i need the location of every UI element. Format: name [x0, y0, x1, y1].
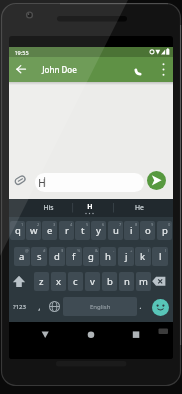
staticText: ( [148, 248, 150, 253]
staticText: f [72, 250, 76, 263]
button[interactable]: . [135, 296, 145, 315]
staticText: 1 [21, 222, 24, 227]
staticText: y [96, 224, 101, 237]
button[interactable]: j [118, 247, 134, 266]
button[interactable]: ?123 [9, 297, 30, 316]
button[interactable]: i [124, 221, 139, 240]
staticText: w [30, 224, 38, 237]
button[interactable]: y [91, 221, 106, 240]
button[interactable]: m [136, 272, 151, 291]
staticText: m [139, 275, 148, 288]
staticText: v [90, 275, 95, 288]
button[interactable]: He [119, 199, 159, 215]
staticText: r [65, 224, 69, 237]
staticText: g [88, 250, 94, 263]
button[interactable]: f [66, 247, 82, 266]
button[interactable]: H [70, 199, 110, 215]
staticText: u [113, 224, 119, 237]
staticText: t [81, 224, 85, 237]
staticText: . [139, 300, 142, 312]
staticText: 0 [168, 222, 171, 227]
button[interactable]: o [140, 221, 155, 240]
staticText: q [15, 224, 21, 237]
button[interactable]: c [68, 272, 83, 291]
button[interactable] [134, 64, 146, 75]
staticText: k [140, 250, 146, 263]
button[interactable] [128, 326, 144, 343]
staticText: 7 [119, 222, 122, 227]
button[interactable] [37, 326, 53, 343]
staticText: , [38, 301, 41, 313]
staticText: John Doe [42, 64, 77, 75]
button[interactable]: H [35, 173, 144, 192]
button[interactable]: English [63, 297, 137, 316]
staticText: b [107, 275, 113, 288]
staticText: ?123 [13, 303, 26, 311]
button[interactable] [13, 173, 27, 187]
staticText: x [56, 275, 62, 288]
button[interactable]: , [34, 297, 44, 316]
staticText: # [43, 248, 46, 253]
staticText: $ [61, 248, 64, 253]
staticText: c [73, 275, 78, 288]
button[interactable]: u [108, 221, 123, 240]
staticText: ) [165, 248, 167, 253]
staticText: H [38, 176, 46, 190]
staticText: 8 [135, 222, 138, 227]
button[interactable]: r [59, 221, 74, 240]
staticText: 2 [37, 222, 40, 227]
button[interactable]: v [85, 272, 100, 291]
button[interactable]: x [51, 272, 66, 291]
staticText: & [95, 248, 98, 253]
staticText: s [37, 250, 42, 263]
staticText: 5 [86, 222, 89, 227]
staticText: 4 [70, 222, 73, 227]
button[interactable]: g [83, 247, 99, 266]
button[interactable]: His [28, 199, 68, 215]
staticText: j [125, 250, 128, 263]
button[interactable]: a [14, 247, 30, 266]
button[interactable] [147, 171, 166, 190]
staticText: p [162, 224, 168, 237]
staticText: 19:55 [14, 49, 29, 56]
button[interactable] [157, 60, 170, 79]
staticText: i [130, 224, 133, 237]
button[interactable]: h [100, 247, 116, 266]
staticText: e [47, 224, 53, 237]
staticText: n [124, 275, 130, 288]
staticText: 3 [53, 222, 56, 227]
staticText: @ [25, 248, 29, 253]
button[interactable]: s [31, 247, 47, 266]
button[interactable]: b [102, 272, 117, 291]
button[interactable]: d [49, 247, 65, 266]
button[interactable] [12, 63, 30, 76]
staticText: + [130, 248, 133, 253]
button[interactable]: w [26, 221, 41, 240]
staticText: % [77, 248, 81, 253]
button[interactable]: e [42, 221, 57, 240]
staticText: 6 [102, 222, 105, 227]
button[interactable] [83, 326, 99, 343]
button[interactable] [149, 272, 169, 291]
staticText: d [54, 250, 60, 263]
button[interactable] [47, 297, 62, 316]
staticText: English [90, 303, 111, 311]
button[interactable]: l [152, 247, 168, 266]
button[interactable]: t [75, 221, 90, 240]
staticText: He [135, 203, 144, 212]
staticText: a [19, 250, 25, 263]
staticText: l [159, 250, 162, 263]
staticText: h [105, 250, 111, 263]
button[interactable]: n [119, 272, 134, 291]
staticText: o [145, 224, 151, 237]
staticText: H [87, 202, 93, 212]
button[interactable]: z [34, 272, 49, 291]
button[interactable] [9, 272, 29, 291]
button[interactable]: q [10, 221, 25, 240]
staticText: - [113, 248, 115, 253]
staticText: His [43, 203, 54, 212]
button[interactable] [152, 299, 169, 316]
button[interactable]: k [135, 247, 151, 266]
staticText: 9 [151, 222, 154, 227]
button[interactable]: p [157, 221, 172, 240]
